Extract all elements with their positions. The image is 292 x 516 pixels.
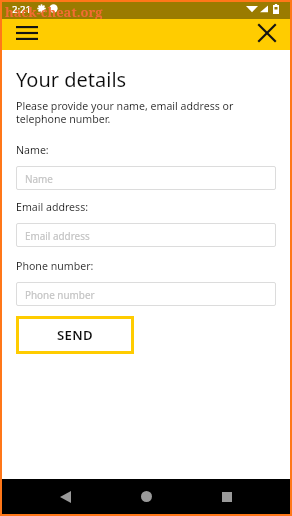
staticText: Phone number: <box>16 259 94 273</box>
staticText: hack-cheat.org <box>5 3 103 20</box>
staticText: Name: <box>16 143 49 157</box>
staticText: Email address: <box>16 200 89 214</box>
button[interactable]: Back <box>43 479 87 514</box>
staticText: Name <box>25 172 53 185</box>
staticText: Phone number <box>25 288 95 301</box>
staticText: 2:21 <box>12 3 32 16</box>
button[interactable]: Close <box>252 18 282 48</box>
button[interactable]: Open navigation menu <box>12 18 42 48</box>
button[interactable]: Home <box>124 479 168 514</box>
button[interactable]: Phone number <box>16 282 276 306</box>
staticText: Your details <box>16 66 127 93</box>
button[interactable]: Name <box>16 166 276 190</box>
staticText: Email address <box>25 229 90 242</box>
staticText: Please provide your name, email address … <box>16 99 276 126</box>
staticText: SEND <box>57 326 93 344</box>
button[interactable]: Email address <box>16 223 276 247</box>
button[interactable]: Recent apps <box>205 479 249 514</box>
button[interactable]: SEND <box>16 316 134 354</box>
